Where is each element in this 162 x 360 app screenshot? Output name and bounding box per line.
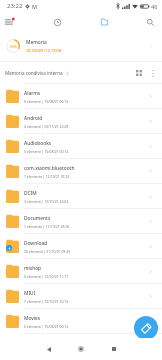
button[interactable]: Movies — [0, 308, 162, 333]
button[interactable]: Categories — [96, 14, 112, 30]
button[interactable]: 25% — [0, 31, 162, 61]
staticText: 46 — [151, 3, 158, 10]
button[interactable]: Android — [0, 108, 162, 133]
button[interactable]: Documents — [0, 208, 162, 233]
staticText: 0 elementi | 15/08/21 00:14 — [24, 99, 69, 104]
staticText: Audiobooks — [24, 140, 52, 147]
staticText: 3 elementi | 12/10/21 22:04 — [24, 199, 69, 204]
staticText: M — [32, 3, 37, 10]
button[interactable]: Recent files — [49, 14, 65, 30]
staticText: 0 elementi | 12/10/21 11:17 — [24, 274, 69, 279]
staticText: Movies — [24, 315, 41, 322]
staticText: 26 elementi | 31/10/21 09:29 — [24, 249, 71, 254]
staticText: 4 elementi | 03/11/21 23:28 — [24, 124, 69, 129]
staticText: 23:22 — [7, 2, 23, 10]
staticText: Download — [24, 240, 48, 247]
button[interactable]: Grid view — [132, 66, 146, 80]
button[interactable]: Clean up storage — [134, 316, 158, 340]
button[interactable]: DCIM — [0, 183, 162, 208]
button[interactable]: Menu — [1, 14, 17, 30]
staticText: mishop — [24, 265, 42, 272]
staticText: 1 elemento | 12/10/21 07:23 — [24, 174, 70, 179]
button[interactable]: Home — [71, 339, 91, 359]
staticText: Android — [24, 115, 43, 122]
staticText: DCIM — [24, 190, 37, 197]
button[interactable]: Memoria condivisa interna — [5, 70, 70, 76]
button[interactable]: Audiobooks — [0, 133, 162, 158]
staticText: 7 elementi | 12/10/21 10:14 — [24, 299, 69, 304]
button[interactable]: Download — [0, 233, 162, 258]
button[interactable]: MIUI — [0, 283, 162, 308]
staticText: 25% — [10, 44, 17, 49]
staticText: com.xiaomi.bluetooth — [24, 165, 75, 172]
staticText: 1 elemento | 11/10/21 23:00 — [24, 224, 70, 229]
staticText: 0 elementi | 15/08/21 00:14 — [24, 324, 69, 329]
staticText: Documents — [24, 215, 51, 222]
staticText: Alarms — [24, 90, 41, 97]
staticText: Memoria — [26, 39, 47, 46]
staticText: Memoria condivisa interna — [5, 70, 63, 76]
button[interactable]: More options — [146, 66, 160, 80]
button[interactable]: Alarms — [0, 83, 162, 108]
button[interactable]: Recents — [104, 339, 124, 359]
button[interactable]: com.xiaomi.bluetooth — [0, 158, 162, 183]
staticText: 28,59GB/112,75GB — [26, 48, 62, 53]
button[interactable]: Back — [39, 339, 59, 359]
button[interactable]: mishop — [0, 258, 162, 283]
button[interactable]: Search — [142, 14, 158, 30]
staticText: 0 elementi | 15/08/21 00:14 — [24, 149, 69, 154]
staticText: MIUI — [24, 290, 36, 297]
